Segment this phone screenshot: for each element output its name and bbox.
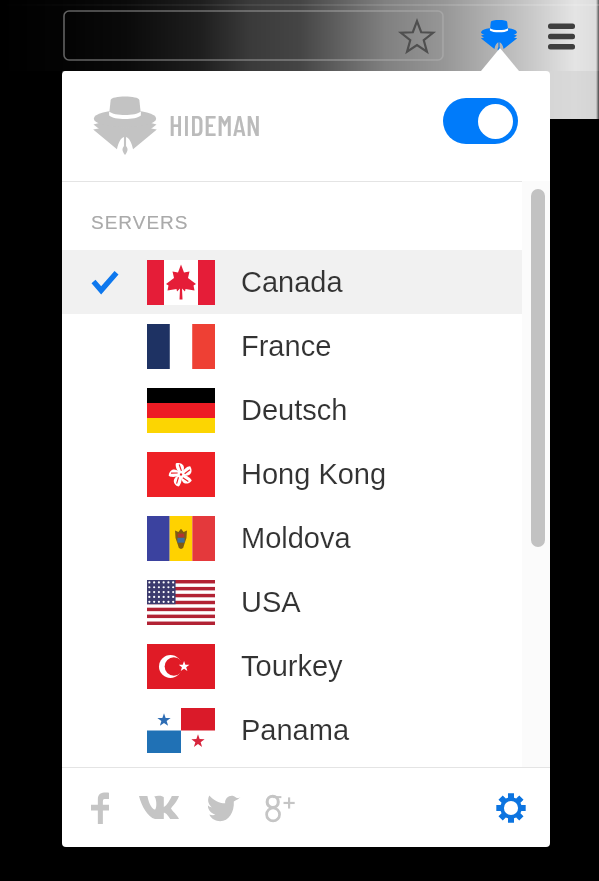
staticText: Hong Kong bbox=[241, 458, 387, 490]
staticText: Deutsch bbox=[241, 394, 348, 426]
staticText: Moldova bbox=[241, 522, 351, 554]
staticText: Tourkey bbox=[241, 650, 343, 682]
staticText: HIDEMAN bbox=[169, 107, 262, 142]
button[interactable]: Bookmark bbox=[399, 19, 435, 55]
button[interactable]: Hong Kong bbox=[62, 442, 550, 506]
button[interactable]: Canada bbox=[62, 250, 550, 314]
button[interactable]: Hideman bbox=[479, 18, 519, 55]
staticText: Panama bbox=[241, 714, 350, 746]
button[interactable]: Deutsch bbox=[62, 378, 550, 442]
button[interactable]: Moldova bbox=[62, 506, 550, 570]
staticText: USA bbox=[241, 586, 301, 618]
button[interactable]: Settings bbox=[496, 793, 526, 823]
button[interactable]: USA bbox=[62, 570, 550, 634]
button[interactable]: VPN enabled bbox=[443, 98, 518, 144]
button[interactable]: Panama bbox=[62, 698, 550, 762]
staticText: SERVERS bbox=[91, 212, 189, 233]
button[interactable]: Tourkey bbox=[62, 634, 550, 698]
button[interactable]: France bbox=[62, 314, 550, 378]
button[interactable]: Twitter bbox=[205, 793, 241, 823]
staticText: Canada bbox=[241, 266, 343, 298]
button[interactable]: Facebook bbox=[91, 792, 109, 824]
button[interactable]: Google Plus bbox=[263, 790, 299, 826]
button[interactable]: Menu bbox=[548, 23, 576, 55]
staticText: France bbox=[241, 330, 332, 362]
button[interactable]: VKontakte bbox=[139, 796, 179, 820]
